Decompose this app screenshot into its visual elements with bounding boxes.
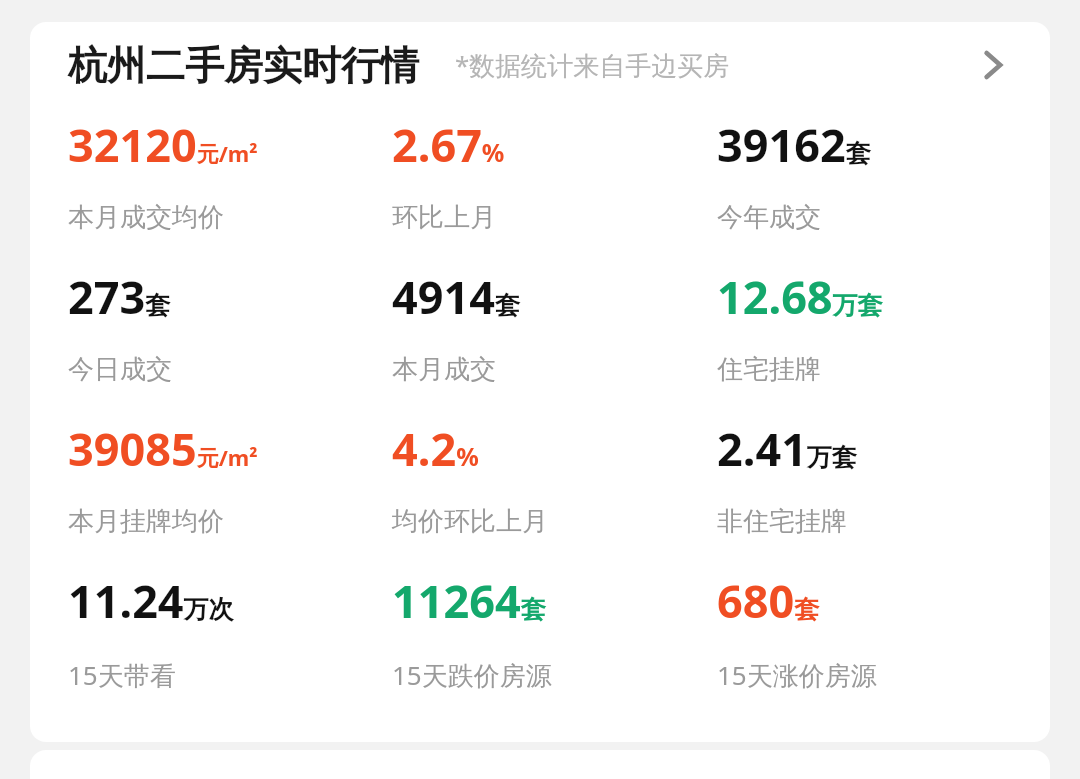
button[interactable]: 2.67% [392, 108, 717, 260]
staticText: 住宅挂牌 [717, 353, 821, 386]
staticText: 32120元/m² [68, 114, 258, 175]
staticText: 15天涨价房源 [717, 657, 877, 693]
staticText: 2.67% [392, 114, 505, 175]
staticText: 4.2% [392, 418, 479, 479]
staticText: 11.24万次 [68, 570, 234, 631]
button[interactable]: 11264套 [392, 564, 717, 716]
staticText: 680套 [717, 570, 820, 631]
staticText: *数据统计来自手边买房 [455, 47, 730, 83]
button[interactable]: 杭州二手房实时行情 [30, 22, 1050, 108]
staticText: 2.41万套 [717, 418, 857, 479]
button[interactable]: 39162套 [717, 108, 1026, 260]
button[interactable]: 12.68万套 [717, 260, 1026, 412]
staticText: 15天跌价房源 [392, 657, 552, 693]
staticText: 本月成交 [392, 353, 496, 386]
button[interactable]: 680套 [717, 564, 1026, 716]
button[interactable]: 32120元/m² [68, 108, 392, 260]
staticText: 杭州二手房实时行情 [68, 41, 419, 90]
staticText: 15天带看 [68, 657, 176, 693]
staticText: 本月成交均价 [68, 201, 224, 234]
staticText: 环比上月 [392, 201, 496, 234]
button[interactable]: 39085元/m² [68, 412, 392, 564]
button[interactable]: 4914套 [392, 260, 717, 412]
staticText: 本月挂牌均价 [68, 505, 224, 538]
button[interactable]: 11.24万次 [68, 564, 392, 716]
staticText: 均价环比上月 [392, 505, 548, 538]
staticText: 39162套 [717, 114, 871, 175]
button[interactable]: 4.2% [392, 412, 717, 564]
staticText: 今日成交 [68, 353, 172, 386]
staticText: 非住宅挂牌 [717, 505, 847, 538]
staticText: 4914套 [392, 266, 520, 327]
button[interactable]: 2.41万套 [717, 412, 1026, 564]
staticText: 今年成交 [717, 201, 821, 234]
staticText: 12.68万套 [717, 266, 883, 327]
staticText: 11264套 [392, 570, 546, 631]
button[interactable]: 273套 [68, 260, 392, 412]
staticText: 273套 [68, 266, 171, 327]
other: 查看更多 [966, 38, 1020, 92]
staticText: 39085元/m² [68, 418, 258, 479]
